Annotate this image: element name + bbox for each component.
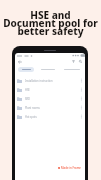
button[interactable] <box>40 67 56 72</box>
button[interactable]: Hot spots <box>17 112 83 121</box>
button[interactable]: Back <box>17 59 22 64</box>
button[interactable]: HSE <box>17 85 83 94</box>
button[interactable]: Made in Framer <box>58 164 81 171</box>
button[interactable]: Search <box>78 59 83 64</box>
button[interactable] <box>63 67 80 72</box>
button[interactable]: Installation instruction <box>17 76 83 85</box>
button[interactable] <box>18 67 34 72</box>
button[interactable]: Plant rooms <box>17 103 83 112</box>
button[interactable]: Sort <box>71 59 76 64</box>
staticText: SRD <box>25 97 30 101</box>
staticText: Made in Framer <box>61 166 81 170</box>
staticText: HSE and Document pool for better safety <box>3 8 98 38</box>
staticText: HSE <box>25 88 30 92</box>
staticText: Plant rooms <box>25 106 40 110</box>
button[interactable]: SRD <box>17 94 83 103</box>
staticText: Installation instruction <box>25 79 53 83</box>
staticText: Hot spots <box>25 115 37 119</box>
